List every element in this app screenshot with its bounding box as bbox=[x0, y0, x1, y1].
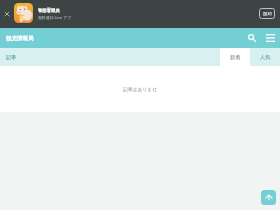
button[interactable]: Scroll to top bbox=[261, 190, 276, 205]
button[interactable]: Menu bbox=[263, 31, 277, 45]
staticText: 警察署職員 bbox=[38, 8, 60, 13]
staticText: 新着 bbox=[230, 54, 241, 61]
button[interactable]: 人気 bbox=[250, 48, 280, 66]
button[interactable]: Search bbox=[245, 31, 259, 45]
staticText: 人気 bbox=[260, 54, 271, 61]
button[interactable]: Close bbox=[1, 8, 13, 20]
staticText: 記事 bbox=[6, 54, 17, 61]
staticText: 開始 bbox=[263, 11, 272, 17]
button[interactable]: 新着 bbox=[220, 48, 250, 66]
button[interactable]: 開始 bbox=[259, 8, 275, 19]
staticText: 記事はありませ bbox=[123, 86, 158, 92]
staticText: 無料通話 Line アプ bbox=[38, 15, 72, 20]
staticText: 観光情報局 bbox=[6, 35, 34, 42]
